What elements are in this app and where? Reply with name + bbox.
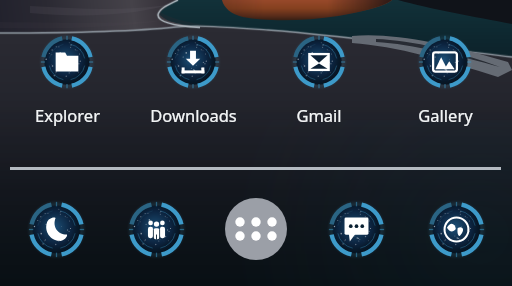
button[interactable]: Gallery (382, 35, 508, 126)
button[interactable]: Gmail (256, 35, 382, 126)
staticText: Downloads (150, 104, 237, 126)
staticText: Gmail (296, 104, 342, 126)
button[interactable]: Messaging (306, 198, 406, 260)
staticText: Gallery (418, 104, 473, 126)
button[interactable]: People (106, 198, 206, 260)
button[interactable]: All apps (225, 198, 287, 260)
button[interactable]: Phone (6, 198, 106, 260)
button[interactable]: Explorer (4, 35, 130, 126)
button[interactable]: Downloads (130, 35, 256, 126)
staticText: Explorer (35, 104, 100, 126)
button[interactable]: Browser (406, 198, 506, 260)
